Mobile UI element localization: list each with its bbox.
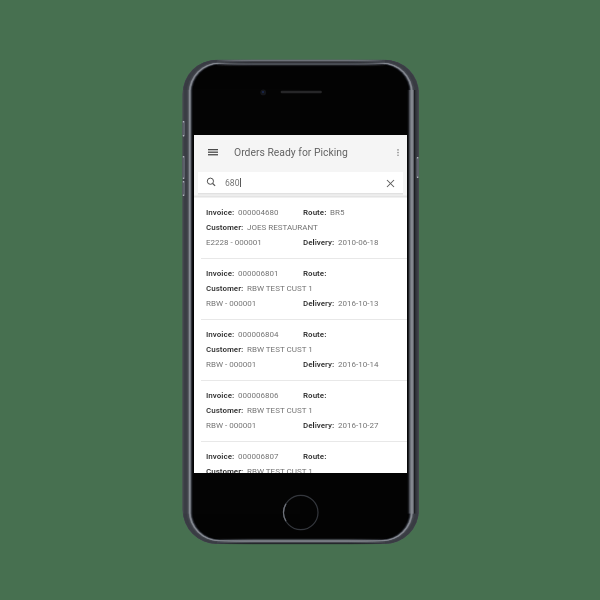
staticText: Customer:: [206, 467, 244, 473]
staticText: RBW - 000001: [206, 421, 257, 430]
button[interactable]: Invoice:: [194, 198, 407, 258]
staticText: Delivery:: [303, 299, 335, 308]
button[interactable]: Open navigation drawer: [202, 141, 224, 163]
staticText: 000004680: [238, 208, 279, 217]
staticText: 000006804: [238, 330, 279, 339]
staticText: RBW TEST CUST 1: [247, 467, 313, 473]
staticText: Customer:: [206, 345, 244, 354]
staticText: RBW TEST CUST 1: [247, 406, 313, 415]
button[interactable]: Invoice:: [194, 320, 407, 380]
staticText: 2016-10-27: [338, 421, 379, 430]
button[interactable]: More options: [390, 144, 406, 160]
staticText: Invoice:: [206, 391, 235, 400]
staticText: Delivery:: [303, 238, 335, 247]
staticText: RBW TEST CUST 1: [247, 345, 313, 354]
staticText: Invoice:: [206, 269, 235, 278]
staticText: Invoice:: [206, 208, 235, 217]
staticText: 680: [225, 178, 240, 188]
staticText: Invoice:: [206, 452, 235, 461]
staticText: 000006807: [238, 452, 279, 461]
staticText: 2016-10-13: [338, 299, 379, 308]
staticText: Delivery:: [303, 421, 335, 430]
button[interactable]: Invoice:: [194, 259, 407, 319]
staticText: BR5: [330, 208, 345, 217]
button[interactable]: 680: [198, 172, 403, 193]
staticText: Route:: [303, 269, 327, 278]
staticText: E2228 - 000001: [206, 238, 262, 247]
staticText: Route:: [303, 330, 327, 339]
staticText: JOES RESTAURANT: [247, 223, 318, 232]
staticText: Customer:: [206, 284, 244, 293]
staticText: Invoice:: [206, 330, 235, 339]
staticText: 000006801: [238, 269, 279, 278]
staticText: Customer:: [206, 223, 244, 232]
staticText: 000006806: [238, 391, 279, 400]
button[interactable]: Clear search text: [382, 175, 398, 191]
staticText: RBW - 000001: [206, 360, 257, 369]
staticText: Route:: [303, 208, 327, 217]
button[interactable]: Invoice:: [194, 381, 407, 441]
staticText: Orders Ready for Picking: [234, 146, 348, 158]
staticText: Route:: [303, 452, 327, 461]
staticText: 2016-10-14: [338, 360, 379, 369]
staticText: RBW - 000001: [206, 299, 257, 308]
staticText: 2010-06-18: [338, 238, 379, 247]
staticText: Route:: [303, 391, 327, 400]
button[interactable]: Invoice:: [194, 442, 407, 473]
staticText: Delivery:: [303, 360, 335, 369]
staticText: Customer:: [206, 406, 244, 415]
staticText: RBW TEST CUST 1: [247, 284, 313, 293]
